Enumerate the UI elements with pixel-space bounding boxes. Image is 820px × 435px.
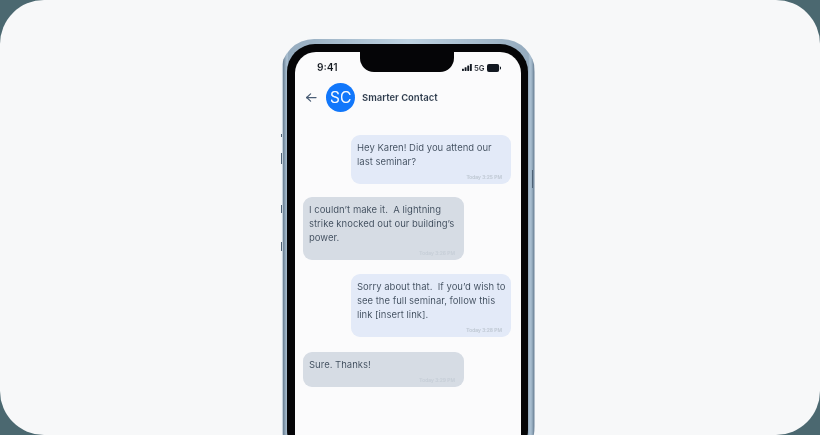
button[interactable]: Smarter Contact avatar	[326, 83, 355, 112]
button[interactable]: Hey Karen! Did you attend our last semin…	[351, 135, 511, 184]
staticText: SC	[330, 88, 352, 107]
button[interactable]: Sure. Thanks!	[303, 352, 464, 387]
staticText: Smarter Contact	[362, 92, 438, 103]
staticText: I couldn’t make it. A lightning strike k…	[309, 204, 455, 243]
staticText: Today 3:26 PM	[303, 250, 455, 256]
staticText: Sorry about that. If you’d wish to see t…	[357, 281, 506, 320]
staticText: Today 3:28 PM	[351, 327, 502, 333]
staticText: Hey Karen! Did you attend our last semin…	[357, 142, 492, 167]
staticText: Today 3:29 PM	[303, 377, 455, 383]
staticText: Today 3:25 PM	[351, 174, 502, 180]
staticText: Sure. Thanks!	[309, 359, 371, 370]
button[interactable]: Sorry about that. If you’d wish to see t…	[351, 274, 511, 337]
staticText: 5G	[474, 64, 485, 73]
button[interactable]: Back	[300, 86, 322, 108]
button[interactable]: I couldn’t make it. A lightning strike k…	[303, 197, 464, 260]
staticText: 9:41	[317, 61, 338, 73]
